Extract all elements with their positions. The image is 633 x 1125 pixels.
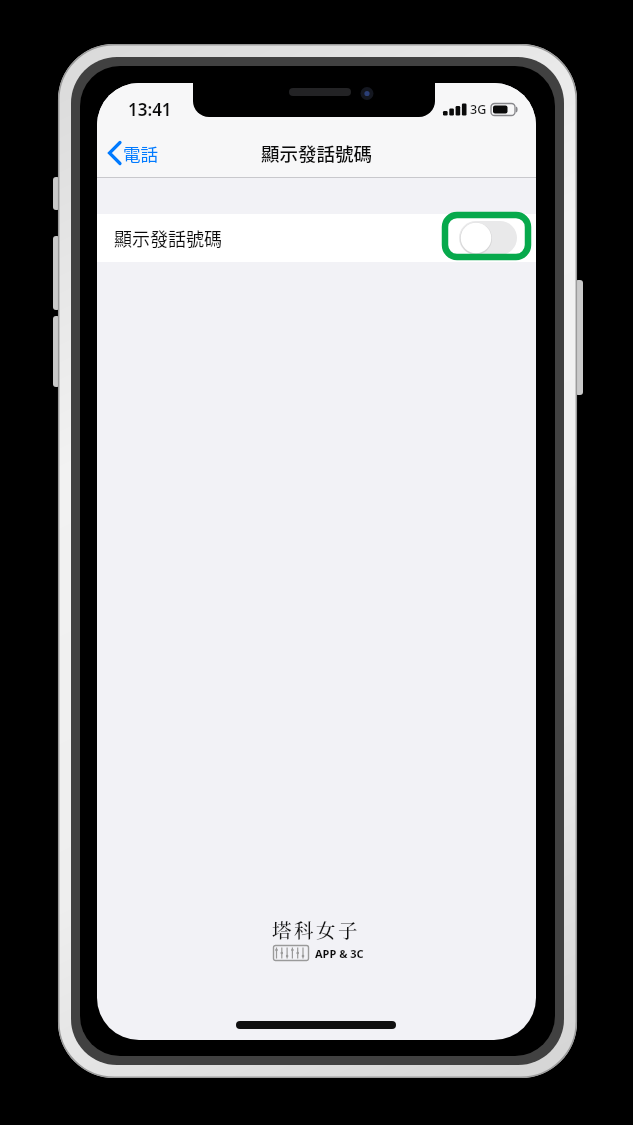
staticText: 3G (470, 101, 487, 118)
button[interactable]: 電話 (105, 139, 158, 167)
staticText: 13:41 (128, 98, 172, 121)
button[interactable] (459, 221, 517, 255)
staticText: 顯示發話號碼 (261, 140, 373, 167)
staticText: 塔科女子 (272, 916, 361, 944)
staticText: 電話 (123, 141, 158, 166)
button[interactable]: 顯示發話號碼 (97, 214, 536, 262)
staticText: APP & 3C (315, 946, 364, 961)
staticText: 顯示發話號碼 (114, 225, 222, 251)
